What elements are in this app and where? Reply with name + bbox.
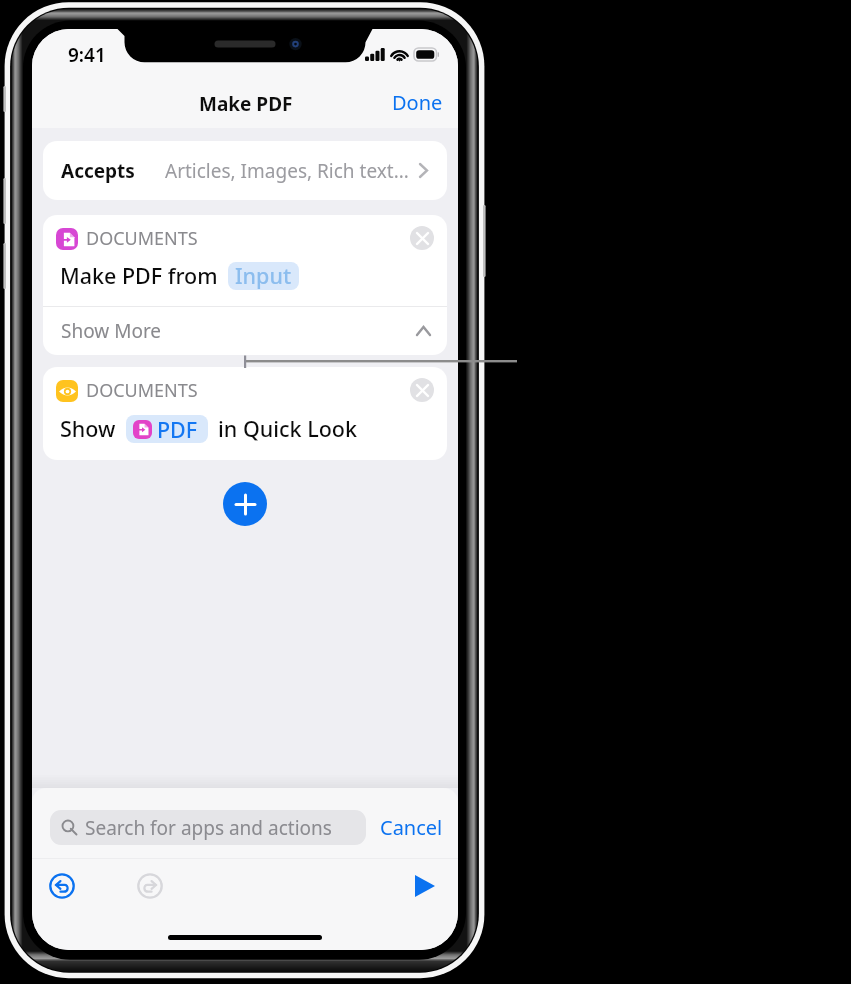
button[interactable]: Accepts [43, 141, 447, 200]
button[interactable]: Add action [223, 482, 267, 526]
staticText: DOCUMENTS [86, 378, 198, 403]
button[interactable]: DOCUMENTS [43, 367, 447, 460]
staticText: Done [392, 89, 443, 116]
staticText: Articles, Images, Rich text... [165, 158, 409, 184]
button[interactable]: Cancel [370, 810, 453, 845]
button[interactable]: Run shortcut [412, 873, 438, 899]
button[interactable]: Search for apps and actions [50, 810, 366, 845]
button[interactable]: Undo [49, 873, 75, 899]
button[interactable]: Input [228, 262, 299, 290]
staticText: DOCUMENTS [86, 226, 198, 251]
staticText: Make PDF [199, 91, 293, 117]
staticText: Make PDF from [60, 261, 218, 290]
staticText: Input [235, 262, 292, 289]
button[interactable]: Redo [137, 873, 163, 899]
staticText: Search for apps and actions [85, 815, 332, 841]
staticText: Accepts [61, 158, 135, 184]
button[interactable]: Remove action [410, 226, 434, 250]
staticText: in Quick Look [218, 414, 357, 443]
button[interactable]: Show More [43, 307, 447, 355]
button[interactable]: Done [375, 81, 458, 124]
staticText: 9:41 [68, 42, 106, 68]
button[interactable]: DOCUMENTS [43, 215, 447, 306]
staticText: PDF [157, 415, 198, 443]
staticText: Show [60, 414, 116, 443]
staticText: Cancel [380, 814, 443, 841]
button[interactable]: PDF [126, 415, 208, 443]
staticText: Show More [61, 318, 162, 344]
button[interactable]: Remove action [410, 378, 434, 402]
